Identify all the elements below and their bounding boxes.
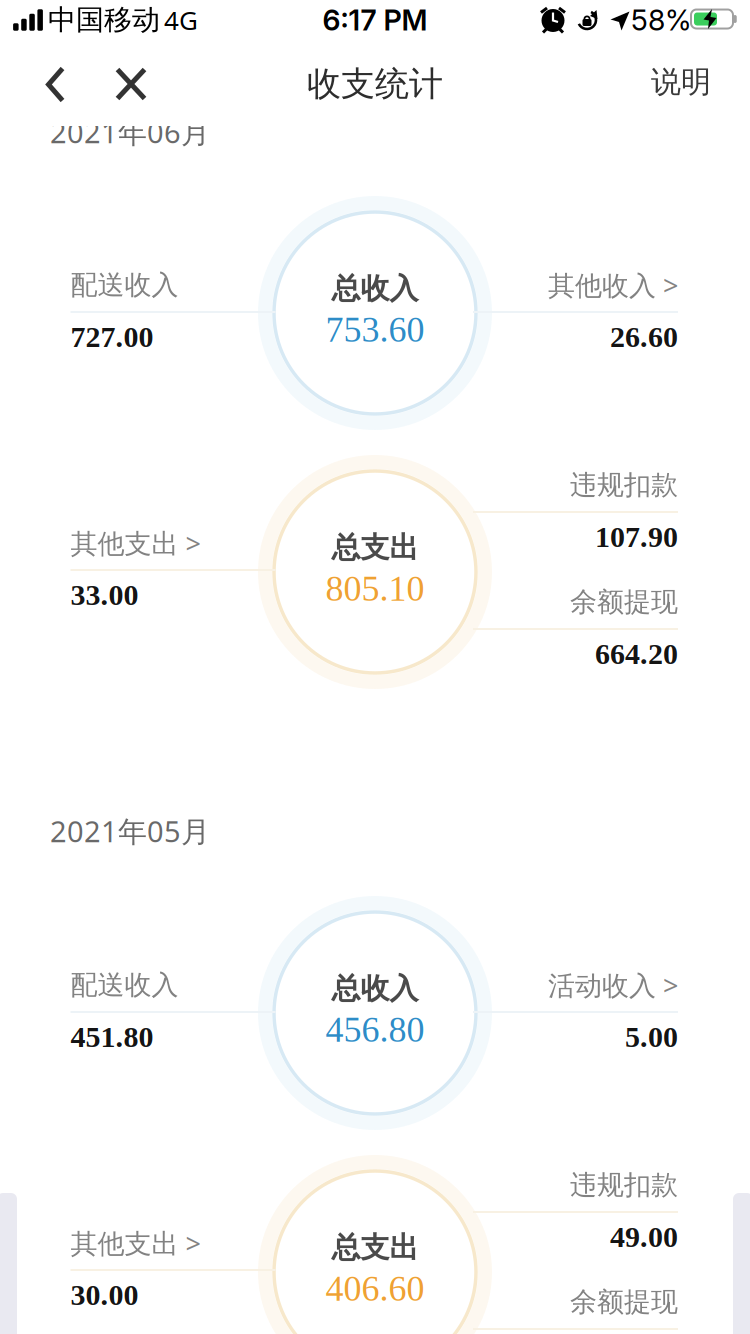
- staticText: 33.00: [70, 578, 138, 612]
- staticText: 4G: [164, 2, 198, 38]
- staticText: 活动收入 >: [548, 967, 678, 1003]
- staticText: 余额提现: [570, 1285, 678, 1319]
- staticText: 456.80: [325, 1010, 424, 1049]
- button[interactable]: 其他收入 >: [473, 267, 678, 303]
- staticText: 2021年05月: [50, 811, 210, 851]
- staticText: 30.00: [70, 1278, 138, 1312]
- staticText: 727.00: [70, 320, 153, 354]
- staticText: 中国移动: [48, 2, 160, 38]
- staticText: 总支出: [331, 1229, 418, 1266]
- staticText: 49.00: [610, 1220, 678, 1254]
- staticText: 805.10: [325, 569, 424, 608]
- staticText: 451.80: [70, 1020, 153, 1054]
- button[interactable]: 其他支出 >: [70, 1225, 275, 1261]
- staticText: 其他支出 >: [70, 1225, 200, 1261]
- staticText: 753.60: [325, 310, 424, 349]
- staticText: 说明: [651, 63, 711, 101]
- button[interactable]: 活动收入 >: [473, 967, 678, 1003]
- staticText: 406.60: [325, 1269, 424, 1308]
- staticText: 配送收入: [70, 268, 178, 302]
- staticText: 违规扣款: [570, 468, 678, 502]
- staticText: 其他支出 >: [70, 525, 200, 561]
- button[interactable]: 说明: [651, 63, 711, 101]
- staticText: 2021年06月: [50, 112, 210, 152]
- staticText: 收支统计: [307, 63, 443, 105]
- staticText: 107.90: [595, 520, 678, 554]
- staticText: 26.60: [610, 320, 678, 354]
- staticText: 总收入: [331, 970, 418, 1007]
- staticText: 总收入: [331, 270, 418, 307]
- button[interactable]: Back: [46, 66, 64, 102]
- staticText: 5.00: [625, 1020, 678, 1054]
- staticText: 664.20: [595, 637, 678, 671]
- staticText: 6:17 PM: [322, 3, 427, 37]
- button[interactable]: Close: [115, 67, 146, 100]
- staticText: 余额提现: [570, 585, 678, 619]
- staticText: 违规扣款: [570, 1168, 678, 1202]
- staticText: 其他收入 >: [548, 267, 678, 303]
- staticText: 配送收入: [70, 968, 178, 1002]
- button[interactable]: 其他支出 >: [70, 525, 275, 561]
- staticText: 总支出: [331, 529, 418, 566]
- staticText: 58%: [631, 3, 691, 37]
